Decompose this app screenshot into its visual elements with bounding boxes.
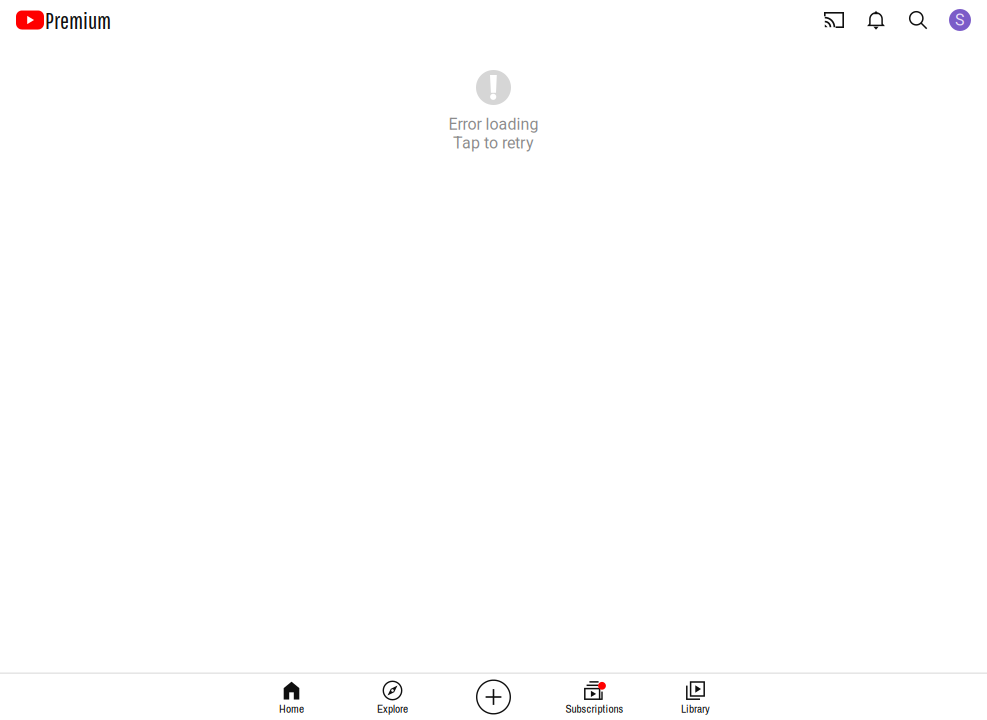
button[interactable]: Library xyxy=(645,674,746,720)
staticText: Home xyxy=(279,701,304,716)
button[interactable]: Notifications xyxy=(855,0,897,40)
button[interactable]: Home xyxy=(241,674,342,720)
button[interactable]: Cast xyxy=(813,0,855,40)
button[interactable]: Create xyxy=(443,674,544,720)
staticText: S xyxy=(955,11,965,29)
staticText: Error loading xyxy=(448,115,538,134)
staticText: Tap to retry xyxy=(453,134,534,153)
staticText: Explore xyxy=(377,701,408,716)
staticText: Library xyxy=(681,701,710,716)
staticText: Premium xyxy=(45,6,111,34)
button[interactable]: Subscriptions xyxy=(544,674,645,720)
button[interactable]: Your account xyxy=(939,0,981,40)
staticText: Subscriptions xyxy=(565,701,623,716)
button[interactable]: Search xyxy=(897,0,939,40)
button[interactable]: Explore xyxy=(342,674,443,720)
button[interactable]: YouTube Premium xyxy=(0,0,119,40)
button[interactable]: Error loading xyxy=(0,40,987,152)
